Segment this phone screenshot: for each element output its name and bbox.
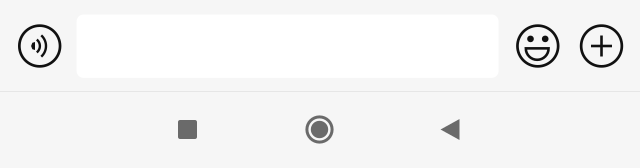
button[interactable]: Add attachment [573,15,629,77]
button[interactable]: Emoji [510,15,566,77]
button[interactable]: Home [274,99,364,159]
button[interactable]: Overview [142,99,232,159]
button[interactable]: Back [405,99,495,159]
button[interactable]: Record voice message [12,15,68,77]
